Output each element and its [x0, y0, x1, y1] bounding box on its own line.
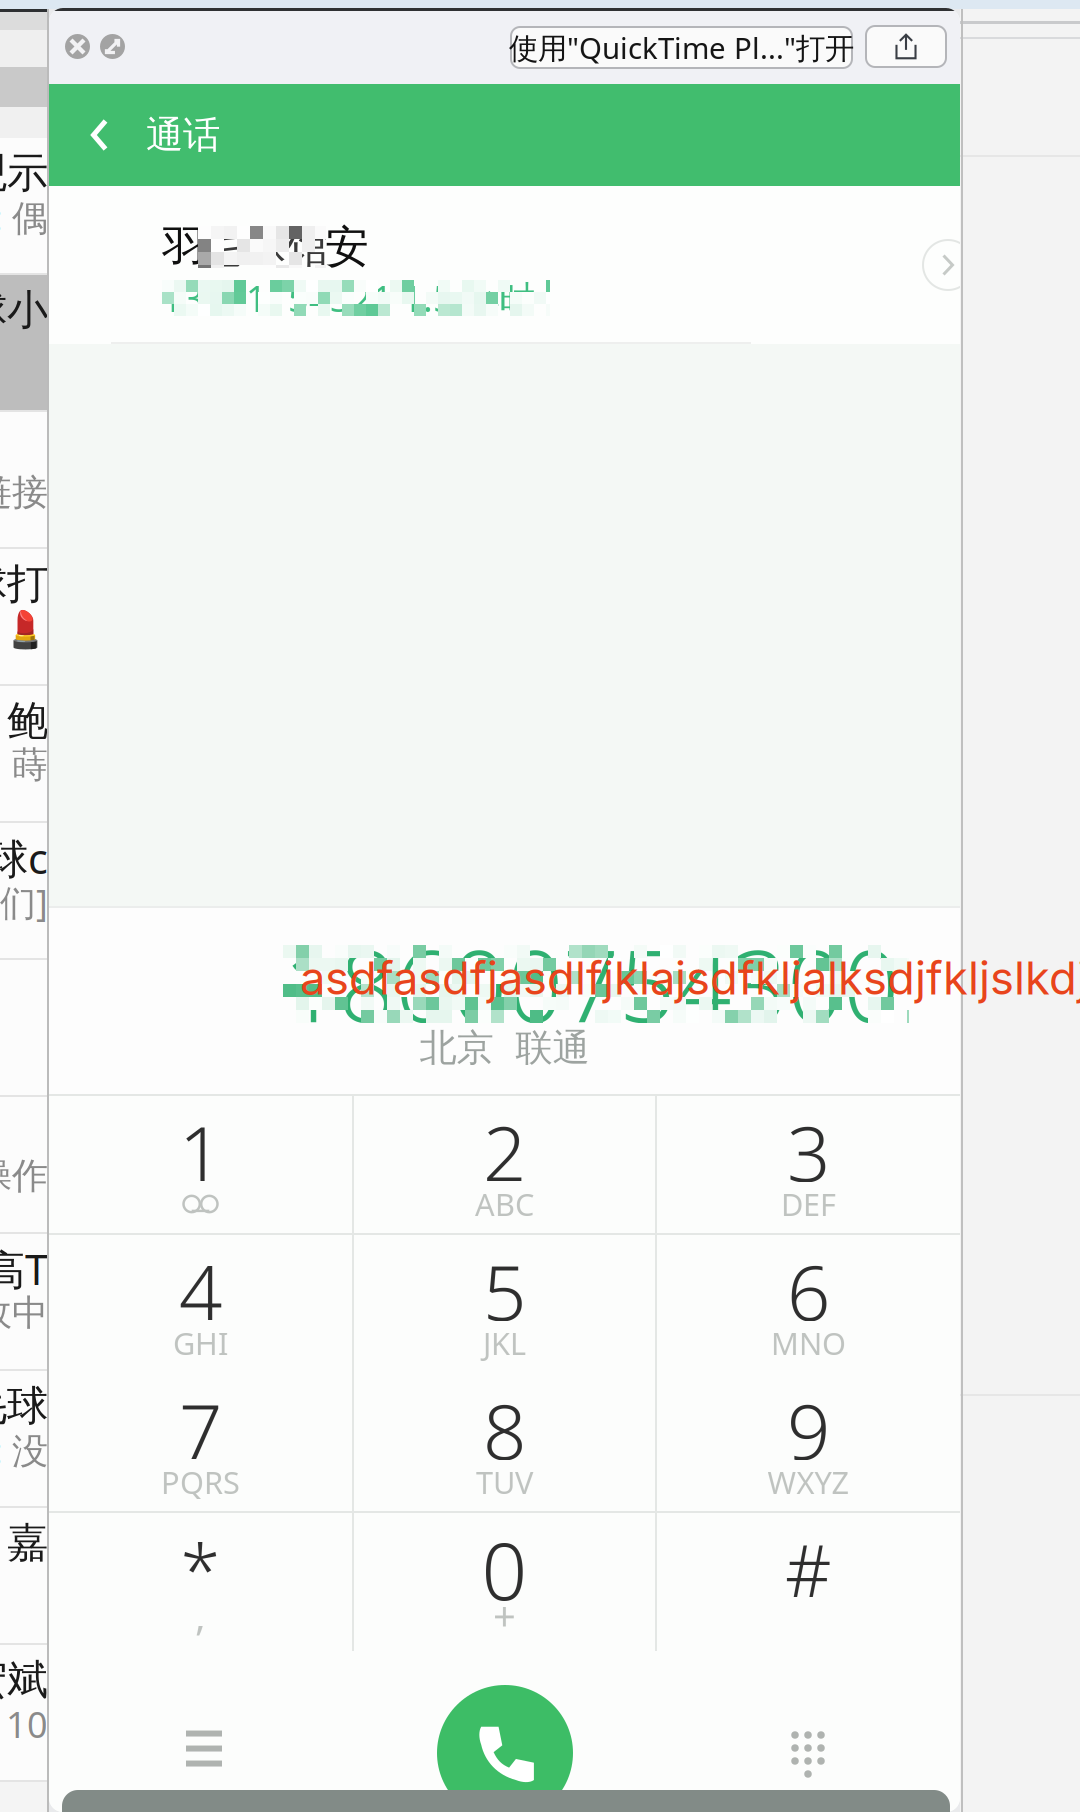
- staticText: ABC: [475, 1184, 534, 1224]
- button[interactable]: 0: [352, 1511, 657, 1650]
- button[interactable]: Close: [65, 34, 90, 59]
- button[interactable]: 9: [657, 1372, 960, 1511]
- staticText: 毛球: [0, 1381, 48, 1431]
- staticText: 8: [483, 1379, 526, 1480]
- staticText: #: [785, 1521, 832, 1617]
- button[interactable]: Keypad: [743, 1678, 873, 1812]
- staticText: 带: 没: [0, 1426, 48, 1474]
- button[interactable]: Call: [437, 1685, 573, 1812]
- staticText: 通话: [146, 112, 220, 158]
- button[interactable]: #: [657, 1511, 960, 1650]
- staticText: [链接: [0, 467, 48, 515]
- staticText: JKL: [483, 1323, 526, 1363]
- staticText: 毛球馆: [198, 220, 330, 274]
- staticText: 儿: 偶: [0, 193, 48, 241]
- staticText: 毛球c: [0, 831, 48, 885]
- button[interactable]: 6: [657, 1233, 960, 1372]
- staticText: 蒔: [12, 743, 48, 787]
- button[interactable]: 8: [352, 1372, 657, 1511]
- staticText: ,: [195, 1588, 206, 1641]
- staticText: 2: [483, 1101, 526, 1202]
- staticText: 9: [787, 1379, 830, 1480]
- staticText: 宏斌: [0, 1655, 48, 1705]
- button[interactable]: *: [49, 1511, 352, 1650]
- button[interactable]: Enter Full Screen: [100, 34, 125, 59]
- button[interactable]: 1: [49, 1094, 352, 1233]
- staticText: GHI: [173, 1323, 228, 1363]
- staticText: 高T: [0, 1242, 48, 1296]
- staticText: 嘉: [7, 1518, 48, 1568]
- staticText: 3: [787, 1101, 830, 1202]
- staticText: 18600754300: [283, 918, 899, 1049]
- staticText: 球打: [0, 559, 48, 609]
- button[interactable]: 7: [49, 1372, 352, 1511]
- staticText: 北京 联通: [419, 1025, 589, 1071]
- button[interactable]: 2: [352, 1094, 657, 1233]
- staticText: 6: [787, 1240, 830, 1341]
- staticText: 鲍: [7, 696, 48, 746]
- staticText: 操作: [0, 1154, 48, 1198]
- button[interactable]: 羽: [49, 186, 960, 344]
- staticText: 4: [179, 1240, 222, 1341]
- staticText: 7: [179, 1379, 222, 1480]
- button[interactable]: Share: [866, 26, 946, 67]
- staticText: asdfasdfjasdlfjklajsdfkljalksdjfkljslkdj…: [300, 951, 1080, 1005]
- staticText: 13601154321 1.5 小时: [162, 274, 535, 322]
- staticText: PQRS: [161, 1462, 240, 1502]
- staticText: 0: [481, 1516, 527, 1622]
- staticText: 球小: [0, 285, 48, 335]
- staticText: 安: [325, 220, 369, 274]
- staticText: WXYZ: [767, 1462, 849, 1502]
- button[interactable]: 3: [657, 1094, 960, 1233]
- staticText: 1: [179, 1101, 222, 1202]
- button[interactable]: 通话: [49, 84, 236, 186]
- staticText: 5: [483, 1240, 526, 1341]
- staticText: *: [180, 1521, 220, 1617]
- staticText: 政中: [0, 1291, 48, 1335]
- staticText: +: [493, 1588, 516, 1641]
- staticText: 羽: [162, 220, 206, 274]
- staticText: 07 10: [0, 1700, 48, 1748]
- staticText: MNO: [771, 1323, 846, 1363]
- staticText: 使用"QuickTime Pl..."打开: [509, 28, 854, 67]
- staticText: DEF: [781, 1184, 836, 1224]
- button[interactable]: 使用"QuickTime Pl..."打开: [511, 27, 852, 68]
- staticText: 们]: [0, 878, 48, 926]
- staticText: TUV: [476, 1462, 533, 1502]
- button[interactable]: 4: [49, 1233, 352, 1372]
- staticText: 西 💄: [0, 606, 48, 650]
- button[interactable]: 5: [352, 1233, 657, 1372]
- staticText: 宏观示: [0, 148, 48, 198]
- button[interactable]: Call log: [139, 1672, 269, 1812]
